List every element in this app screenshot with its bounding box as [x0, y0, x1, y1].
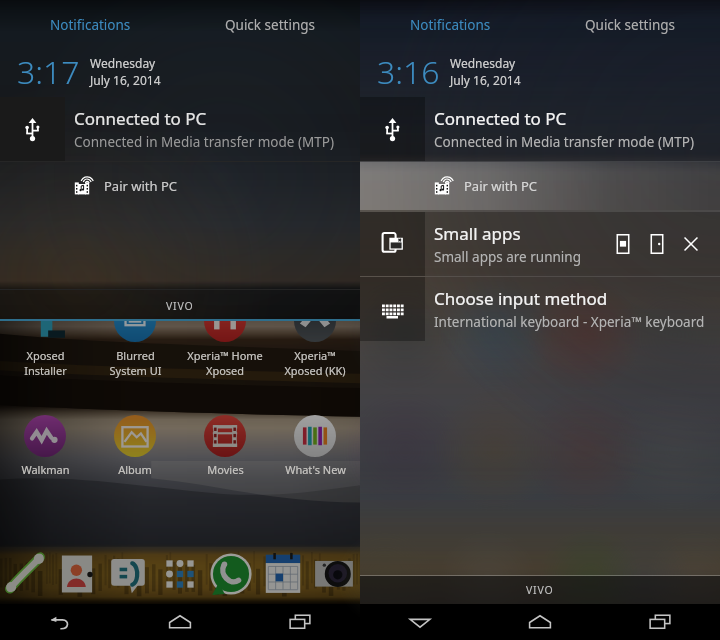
button[interactable]: Pair with PC — [360, 162, 720, 210]
staticText: VIVO — [166, 299, 194, 313]
staticText: Connected in Media transfer mode (MTP) — [434, 133, 694, 151]
button[interactable]: Close — [674, 227, 708, 261]
button[interactable]: Notifications — [360, 14, 540, 36]
staticText: What's New — [285, 462, 346, 477]
staticText: Movies — [207, 462, 244, 477]
button[interactable]: Hide keyboard — [360, 604, 480, 640]
staticText: Notifications — [50, 16, 131, 34]
button[interactable]: Quick settings — [540, 14, 720, 36]
staticText: July 16, 2014 — [450, 72, 521, 88]
staticText: Xperia™ Xposed (KK) — [284, 348, 346, 378]
staticText: Pair with PC — [464, 177, 538, 195]
button[interactable]: Blurred System UI — [90, 348, 180, 388]
button[interactable]: Home — [480, 604, 600, 640]
button[interactable]: Connected to PC — [360, 97, 720, 161]
button[interactable]: Connected to PC — [0, 97, 360, 161]
staticText: International keyboard - Xperia™ keyboar… — [434, 313, 705, 331]
button[interactable]: Recent apps — [600, 604, 720, 640]
button[interactable]: What's New — [270, 462, 360, 482]
staticText: Small apps — [434, 222, 521, 245]
button[interactable]: Quick settings — [180, 14, 360, 36]
staticText: Quick settings — [585, 16, 675, 34]
staticText: July 16, 2014 — [90, 72, 161, 88]
button[interactable]: Walkman — [0, 462, 90, 482]
staticText: VIVO — [526, 583, 554, 597]
staticText: Connected in Media transfer mode (MTP) — [74, 133, 334, 151]
button[interactable]: Xperia™ Home Xposed — [180, 348, 270, 388]
staticText: Xperia™ Home Xposed — [187, 348, 263, 378]
staticText: Xposed Installer — [24, 348, 67, 378]
button[interactable]: Xperia™ Xposed (KK) — [270, 348, 360, 388]
staticText: Notifications — [410, 16, 491, 34]
staticText: Small apps are running — [434, 248, 581, 266]
staticText: Connected to PC — [74, 107, 207, 130]
button[interactable]: Back — [0, 604, 120, 640]
button[interactable]: Pair with PC — [0, 162, 360, 210]
button[interactable]: Notifications — [0, 14, 180, 36]
staticText: Wednesday — [450, 55, 516, 71]
button[interactable]: Movies — [180, 462, 270, 482]
button[interactable]: Recent apps — [240, 604, 360, 640]
staticText: Quick settings — [225, 16, 315, 34]
staticText: 3:16 — [377, 50, 440, 94]
staticText: Album — [118, 462, 152, 477]
staticText: Walkman — [21, 462, 70, 477]
staticText: Choose input method — [434, 287, 608, 310]
button[interactable]: Home — [120, 604, 240, 640]
button[interactable]: Xposed Installer — [0, 348, 90, 388]
button[interactable]: Choose input method — [360, 277, 720, 341]
staticText: Blurred System UI — [109, 348, 162, 378]
staticText: Wednesday — [90, 55, 156, 71]
button[interactable]: Small apps — [360, 212, 720, 276]
staticText: 3:17 — [17, 50, 80, 94]
button[interactable]: Album — [90, 462, 180, 482]
button[interactable]: Minimise small app — [606, 227, 640, 261]
button[interactable]: Small app window — [640, 227, 674, 261]
staticText: Pair with PC — [104, 177, 178, 195]
staticText: Connected to PC — [434, 107, 567, 130]
